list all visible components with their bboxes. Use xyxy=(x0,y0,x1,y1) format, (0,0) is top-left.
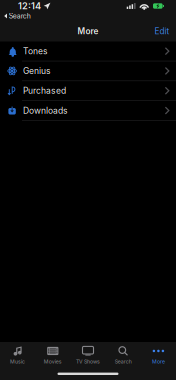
button[interactable]: Movies xyxy=(35,344,70,366)
staticText: Search xyxy=(115,359,132,365)
staticText: Edit xyxy=(154,26,169,36)
staticText: 12:14 xyxy=(18,0,41,11)
button[interactable]: Edit xyxy=(154,22,176,40)
button[interactable]: More xyxy=(141,344,176,366)
staticText: Music xyxy=(10,359,25,365)
button[interactable]: Genius xyxy=(0,61,176,81)
button[interactable]: Purchased xyxy=(0,81,176,101)
staticText: Tones xyxy=(23,46,48,56)
staticText: Genius xyxy=(23,66,51,76)
staticText: Movies xyxy=(44,359,62,365)
staticText: Purchased xyxy=(23,86,66,96)
staticText: Search xyxy=(9,12,31,20)
button[interactable]: Search xyxy=(106,344,141,366)
button[interactable]: Tones xyxy=(0,41,176,61)
button[interactable]: TV Shows xyxy=(70,344,106,366)
staticText: Downloads xyxy=(23,105,68,116)
button[interactable]: Downloads xyxy=(0,101,176,121)
staticText: TV Shows xyxy=(76,359,100,365)
button[interactable]: Music xyxy=(0,344,35,366)
staticText: More xyxy=(77,26,98,36)
staticText: More xyxy=(152,359,165,365)
